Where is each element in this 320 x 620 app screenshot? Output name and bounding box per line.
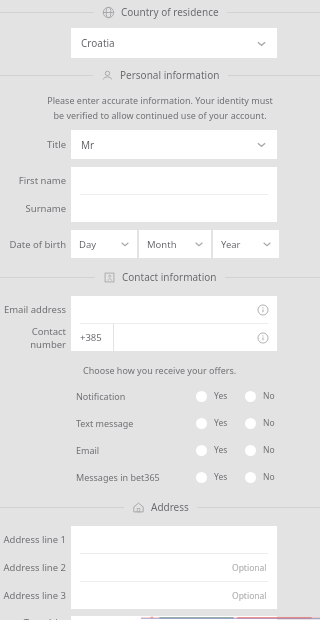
staticText: Text message xyxy=(76,417,134,429)
button[interactable] xyxy=(114,324,277,351)
button[interactable]: Day xyxy=(71,230,137,258)
button[interactable]: Yes xyxy=(194,442,230,458)
staticText: Optional xyxy=(232,562,267,574)
button[interactable]: Croatia xyxy=(71,28,277,58)
staticText: First name xyxy=(18,174,66,187)
button[interactable]: No xyxy=(243,442,277,458)
staticText: Croatia xyxy=(81,36,115,50)
staticText: Email xyxy=(76,444,100,456)
staticText: Address line 2 xyxy=(3,561,66,574)
button[interactable]: Month xyxy=(139,230,211,258)
button[interactable]: No xyxy=(243,415,277,431)
staticText: Address line 3 xyxy=(3,589,66,602)
staticText: Address xyxy=(151,500,189,514)
staticText: No xyxy=(263,390,275,402)
staticText: Year xyxy=(221,238,241,251)
button[interactable]: Optional xyxy=(71,582,277,609)
staticText: Email address xyxy=(3,303,66,316)
staticText: No xyxy=(263,444,275,456)
staticText: Day xyxy=(79,238,97,251)
staticText: +385 xyxy=(80,331,102,344)
staticText: Address line 1 xyxy=(3,533,66,546)
staticText: Contact number xyxy=(0,325,66,351)
staticText: Title xyxy=(47,138,66,151)
staticText: Country of residence xyxy=(121,5,219,19)
staticText: Contact information xyxy=(122,270,217,284)
staticText: Surname xyxy=(25,202,66,215)
staticText: Choose how you receive your offers. xyxy=(83,364,237,376)
button[interactable]: Mr xyxy=(71,130,277,159)
staticText: Optional xyxy=(232,590,267,602)
button[interactable] xyxy=(71,296,277,323)
staticText: Personal information xyxy=(120,68,220,82)
button[interactable]: Yes xyxy=(194,469,230,485)
staticText: Notification xyxy=(76,390,126,402)
button[interactable]: No xyxy=(243,469,277,485)
button[interactable]: +385 xyxy=(71,324,113,351)
staticText: Yes xyxy=(214,390,228,402)
button[interactable] xyxy=(71,616,277,620)
button[interactable]: Yes xyxy=(194,415,230,431)
button[interactable]: Year xyxy=(213,230,279,258)
staticText: Messages in bet365 xyxy=(76,471,160,483)
staticText: Please enter accurate information. Your … xyxy=(42,94,278,121)
staticText: Yes xyxy=(214,471,228,483)
staticText: Yes xyxy=(214,417,228,429)
staticText: Yes xyxy=(214,444,228,456)
staticText: Date of birth xyxy=(9,238,66,251)
staticText: Town/city xyxy=(23,616,66,620)
button[interactable]: Optional xyxy=(71,554,277,581)
button[interactable]: Yes xyxy=(194,388,230,404)
staticText: Month xyxy=(147,238,177,251)
staticText: Mr xyxy=(81,138,95,152)
staticText: No xyxy=(263,417,275,429)
staticText: No xyxy=(263,471,275,483)
button[interactable]: No xyxy=(243,388,277,404)
